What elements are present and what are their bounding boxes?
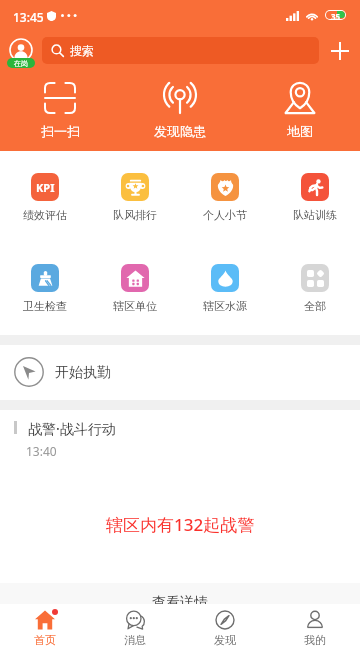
button[interactable]: 搜索 <box>42 37 319 64</box>
button[interactable]: 首页 <box>0 604 90 647</box>
staticText: 地图 <box>287 123 313 139</box>
staticText: 辖区水源 <box>203 299 247 313</box>
staticText: 队风排行 <box>113 208 157 222</box>
staticText: 搜索 <box>70 43 94 58</box>
staticText: 35 <box>331 11 341 19</box>
staticText: 绩效评估 <box>23 208 67 222</box>
staticText: 扫一扫 <box>41 123 80 139</box>
staticText: 队站训练 <box>293 208 337 222</box>
button[interactable]: 辖区水源 <box>180 264 270 313</box>
staticText: 个人小节 <box>203 208 247 222</box>
staticText: 查看详情 <box>152 594 208 612</box>
button[interactable]: 辖区单位 <box>90 264 180 313</box>
staticText: 战警·战斗行动 <box>28 419 116 438</box>
staticText: 13:45 <box>13 9 44 25</box>
button[interactable]: Add <box>325 36 355 66</box>
staticText: 开始执勤 <box>55 364 111 382</box>
staticText: KPI <box>36 180 55 195</box>
staticText: 发现 <box>214 633 236 647</box>
button[interactable]: 卫生检查 <box>0 264 90 313</box>
button[interactable]: 个人小节 <box>180 173 270 222</box>
staticText: 在岗 <box>14 59 28 68</box>
staticText: 辖区内有132起战警 <box>106 513 255 536</box>
button[interactable]: 开始执勤 <box>0 345 360 400</box>
button[interactable]: 地图 <box>240 82 360 139</box>
button[interactable]: KPI <box>0 173 90 222</box>
button[interactable]: Profile <box>7 36 35 68</box>
button[interactable]: 队站训练 <box>270 173 360 222</box>
button[interactable]: 扫一扫 <box>0 82 120 139</box>
button[interactable]: 发现隐患 <box>120 82 240 139</box>
button[interactable]: 全部 <box>270 264 360 313</box>
staticText: 全部 <box>304 299 326 313</box>
staticText: 卫生检查 <box>23 299 67 313</box>
staticText: 首页 <box>34 633 56 647</box>
button[interactable]: 我的 <box>270 604 360 647</box>
staticText: 我的 <box>304 633 326 647</box>
staticText: 13:40 <box>26 443 57 459</box>
staticText: 辖区单位 <box>113 299 157 313</box>
button[interactable]: 发现 <box>180 604 270 647</box>
staticText: 消息 <box>124 633 146 647</box>
button[interactable]: 队风排行 <box>90 173 180 222</box>
staticText: 发现隐患 <box>154 123 206 139</box>
button[interactable]: 消息 <box>90 604 180 647</box>
